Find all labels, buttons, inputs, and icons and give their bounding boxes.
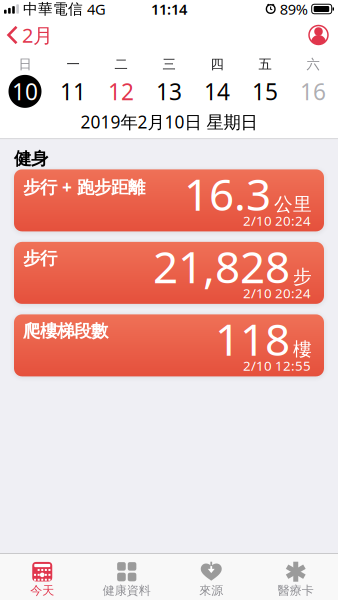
staticText: 11:14	[151, 0, 187, 19]
button[interactable]: 2月	[0, 22, 53, 48]
staticText: 五	[258, 56, 271, 72]
staticText: 日	[18, 56, 31, 72]
staticText: 11	[60, 76, 86, 106]
staticText: 一	[66, 56, 79, 72]
button[interactable]: 15	[241, 74, 289, 108]
button[interactable]	[308, 24, 338, 45]
staticText: 公里	[274, 193, 312, 216]
staticText: 醫療卡	[278, 583, 314, 598]
staticText: 來源	[199, 583, 223, 598]
button[interactable]: 醫療卡	[253, 562, 338, 598]
button[interactable]: 14	[193, 74, 241, 108]
staticText: 2/10 12:55	[243, 357, 311, 374]
staticText: 四	[210, 56, 223, 72]
button[interactable]: 12	[97, 74, 145, 108]
button[interactable]: 16	[289, 74, 337, 108]
staticText: 89%	[280, 0, 308, 19]
staticText: 步行 + 跑步距離	[23, 175, 145, 198]
staticText: 2/10 20:24	[243, 284, 311, 302]
staticText: 三	[162, 56, 175, 72]
button[interactable]: 11	[49, 74, 97, 108]
button[interactable]: 10	[1, 74, 49, 108]
staticText: 健康資料	[103, 583, 151, 598]
staticText: 二	[114, 56, 127, 72]
staticText: 健身	[14, 148, 48, 169]
staticText: 步行	[23, 248, 57, 269]
staticText: 步	[293, 265, 312, 288]
button[interactable]: 步行 + 跑步距離	[14, 169, 324, 231]
staticText: 13	[156, 76, 182, 106]
staticText: 16.3	[184, 164, 271, 223]
button[interactable]: 步行	[14, 242, 324, 304]
staticText: 15	[252, 76, 278, 106]
staticText: 4G	[87, 0, 106, 19]
staticText: 10	[12, 76, 38, 106]
button[interactable]: 健康資料	[84, 562, 169, 598]
staticText: 2019年2月10日 星期日	[80, 110, 257, 133]
staticText: 2月	[22, 22, 53, 48]
staticText: 樓	[293, 338, 312, 361]
staticText: 12	[108, 76, 134, 106]
staticText: 六	[306, 56, 319, 72]
staticText: 118	[215, 309, 290, 368]
button[interactable]: 來源	[169, 562, 253, 598]
staticText: 2/10 20:24	[243, 212, 311, 229]
button[interactable]: 今天	[0, 562, 84, 598]
staticText: 14	[204, 76, 230, 106]
staticText: 16	[300, 76, 326, 106]
button[interactable]: 13	[145, 74, 193, 108]
button[interactable]: 爬樓梯段數	[14, 314, 324, 376]
staticText: 今天	[30, 583, 54, 598]
staticText: 21,828	[153, 237, 290, 295]
staticText: 爬樓梯段數	[23, 320, 108, 342]
staticText: 中華電信	[23, 0, 83, 18]
